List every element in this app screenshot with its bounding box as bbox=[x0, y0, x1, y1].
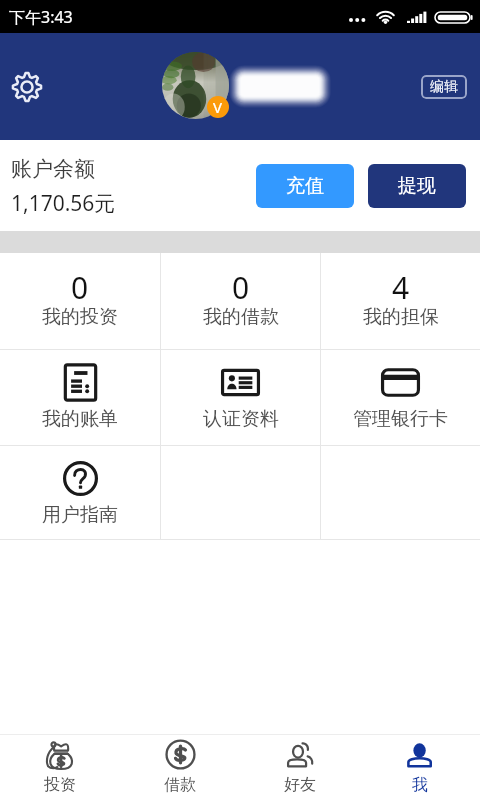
button[interactable]: 0 bbox=[0, 253, 160, 294]
button[interactable]: 好友 bbox=[240, 735, 360, 766]
staticText: 提现 bbox=[398, 174, 436, 198]
staticText: 认证资料 bbox=[203, 407, 279, 431]
button[interactable]: 4 bbox=[321, 253, 480, 294]
staticText: 好友 bbox=[284, 775, 316, 795]
staticText: 我的担保 bbox=[363, 305, 439, 329]
button[interactable]: 管理银行卡 bbox=[321, 350, 480, 387]
button[interactable]: 提现 bbox=[368, 164, 466, 208]
button[interactable]: Settings bbox=[7, 67, 47, 107]
staticText: 我 bbox=[412, 775, 428, 795]
button[interactable]: 投资 bbox=[0, 735, 120, 766]
staticText: 下午3:43 bbox=[9, 6, 73, 28]
staticText: 用户指南 bbox=[42, 503, 118, 527]
button[interactable]: 0 bbox=[161, 253, 320, 294]
staticText: 我的账单 bbox=[42, 407, 118, 431]
staticText: 账户余额 bbox=[11, 156, 95, 182]
staticText: 我的投资 bbox=[42, 305, 118, 329]
button[interactable]: 充值 bbox=[256, 164, 354, 208]
button[interactable]: 认证资料 bbox=[161, 350, 320, 387]
staticText: 管理银行卡 bbox=[353, 407, 448, 431]
staticText: V bbox=[213, 97, 223, 117]
button[interactable]: 我的账单 bbox=[0, 350, 160, 387]
staticText: 0 bbox=[71, 267, 89, 308]
button[interactable]: 编辑 bbox=[421, 75, 467, 99]
staticText: 1,170.56元 bbox=[11, 189, 116, 218]
button[interactable]: 我 bbox=[360, 735, 480, 766]
staticText: 编辑 bbox=[430, 78, 458, 96]
staticText: 0 bbox=[232, 267, 250, 308]
button[interactable]: 用户指南 bbox=[0, 446, 160, 483]
button[interactable]: 借款 bbox=[120, 735, 240, 766]
staticText: 充值 bbox=[286, 174, 324, 198]
staticText: 投资 bbox=[44, 775, 76, 795]
staticText: 我的借款 bbox=[203, 305, 279, 329]
staticText: 4 bbox=[392, 267, 410, 308]
staticText: 借款 bbox=[164, 775, 196, 795]
